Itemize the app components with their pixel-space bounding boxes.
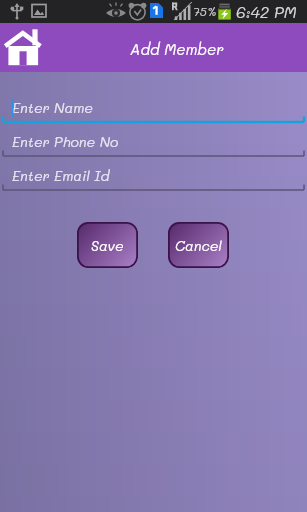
staticText: Enter Email Id	[12, 166, 110, 184]
button[interactable]: Cancel	[168, 222, 229, 268]
staticText: Enter Phone No	[12, 132, 119, 150]
staticText: Save	[91, 236, 124, 254]
staticText: Enter Name	[12, 98, 93, 116]
button[interactable]: Enter Email Id	[0, 160, 307, 196]
staticText: 6:42 PM	[236, 1, 297, 22]
button[interactable]: Enter Phone No	[0, 126, 307, 162]
button[interactable]: Home	[0, 23, 46, 72]
staticText: Cancel	[175, 236, 222, 254]
staticText: 75%	[193, 3, 217, 19]
staticText: Add Member	[130, 39, 224, 58]
button[interactable]: Save	[77, 222, 138, 268]
button[interactable]: Enter Name	[0, 92, 307, 128]
